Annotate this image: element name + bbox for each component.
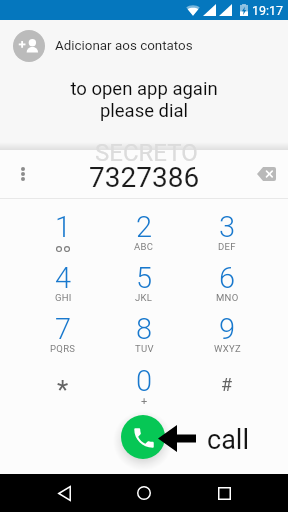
staticText: 2 [136, 210, 153, 244]
button[interactable]: 7 [21, 304, 104, 356]
staticText: JKL [135, 292, 153, 303]
staticText: 3 [219, 210, 236, 244]
staticText: 4 [55, 261, 72, 295]
staticText: GHI [55, 292, 72, 303]
staticText: Adicionar aos contatos [55, 38, 193, 54]
staticText: 7327386 [89, 161, 200, 194]
staticText: * [57, 375, 69, 405]
staticText: 1 [55, 210, 72, 244]
button[interactable]: * [21, 356, 104, 408]
button[interactable]: 1 [21, 199, 104, 251]
button[interactable]: 6 [186, 251, 269, 303]
button[interactable]: Backspace [252, 160, 280, 188]
staticText: DEF [218, 241, 236, 252]
staticText: PQRS [50, 343, 76, 354]
button[interactable]: 3 [186, 199, 269, 251]
button[interactable]: # [186, 356, 269, 408]
button[interactable]: Home [120, 474, 168, 512]
staticText: SECRETO [95, 139, 198, 167]
staticText: ABC [134, 241, 154, 252]
staticText: + [141, 395, 148, 408]
staticText: 5 [136, 261, 153, 295]
staticText: 6 [219, 261, 236, 295]
staticText: MNO [216, 292, 239, 303]
button[interactable]: More options [11, 162, 35, 186]
button[interactable]: 4 [21, 251, 104, 303]
staticText: 0 [136, 364, 153, 398]
button[interactable]: Back [40, 474, 88, 512]
button[interactable]: 9 [186, 304, 269, 356]
button[interactable]: 2 [103, 199, 186, 251]
staticText: 9 [219, 312, 236, 346]
staticText: to open app again please dial [70, 78, 218, 122]
button[interactable]: Adicionar aos contatos [0, 20, 288, 72]
button[interactable]: Recents [200, 474, 248, 512]
staticText: # [221, 374, 233, 395]
staticText: 8 [136, 312, 153, 346]
staticText: WXYZ [214, 343, 241, 354]
staticText: TUV [135, 343, 154, 354]
staticText: call [207, 424, 249, 456]
button[interactable]: Call [121, 415, 165, 459]
button[interactable]: 5 [103, 251, 186, 303]
staticText: 7 [55, 312, 72, 346]
staticText: 19:17 [252, 3, 284, 18]
button[interactable]: 8 [103, 304, 186, 356]
button[interactable]: 0 [103, 356, 186, 408]
